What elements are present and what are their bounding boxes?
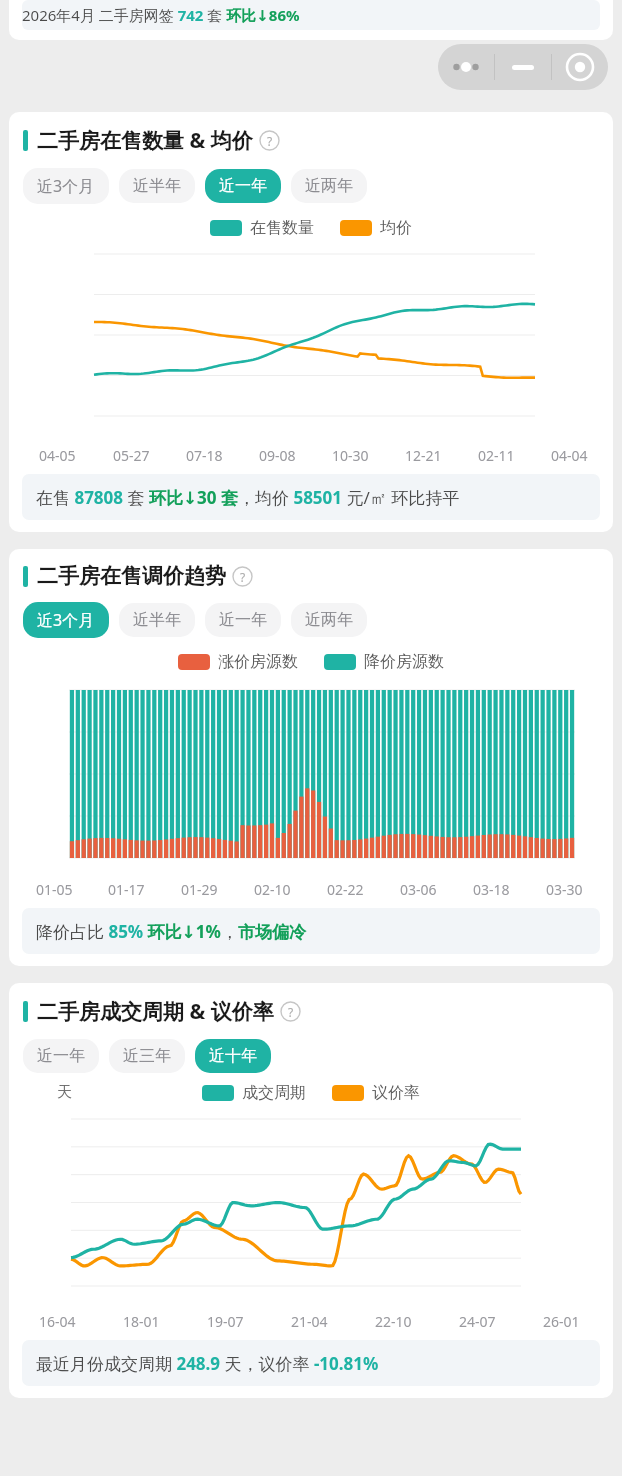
staticText: 近3个月 <box>37 609 95 631</box>
staticText: 22-10 <box>375 1312 412 1331</box>
staticText: 议价率 <box>372 1083 420 1103</box>
button[interactable]: 近3个月 <box>23 168 109 204</box>
button[interactable]: 近三年 <box>109 1039 185 1073</box>
staticText: 近两年 <box>305 176 353 196</box>
staticText: 04-04 <box>551 446 588 465</box>
staticText: 12-21 <box>405 446 442 465</box>
staticText: 二手房成交周期 & 议价率 <box>37 997 274 1026</box>
staticText: 近两年 <box>305 610 353 630</box>
staticText: 近半年 <box>133 176 181 196</box>
staticText: 均价 <box>380 218 412 238</box>
button[interactable]: 降价占比 85% 环比↓1%，市场偏冷 <box>22 908 600 954</box>
staticText: 03-06 <box>400 880 437 899</box>
staticText: ? <box>267 133 273 149</box>
staticText: 21-04 <box>291 1312 328 1331</box>
button[interactable]: 近一年 <box>23 1039 99 1073</box>
staticText: 03-18 <box>473 880 510 899</box>
staticText: 天 <box>57 1083 72 1102</box>
staticText: 10-30 <box>332 446 369 465</box>
staticText: 04-05 <box>39 446 76 465</box>
button[interactable]: 近半年 <box>119 603 195 637</box>
staticText: 降价占比 85% 环比↓1%，市场偏冷 <box>36 920 306 943</box>
staticText: 01-17 <box>108 880 145 899</box>
staticText: 19-07 <box>207 1312 244 1331</box>
staticText: 18-01 <box>123 1312 160 1331</box>
button[interactable]: More <box>438 44 494 90</box>
button[interactable]: 在售 87808 套 环比↓30 套，均价 58501 元/㎡ 环比持平 <box>22 474 600 520</box>
staticText: 在售 87808 套 环比↓30 套，均价 58501 元/㎡ 环比持平 <box>36 486 460 509</box>
button[interactable]: 近一年 <box>205 603 281 637</box>
staticText: 03-30 <box>546 880 583 899</box>
staticText: 二手房在售数量 & 均价 <box>37 126 253 155</box>
button[interactable]: 近半年 <box>119 169 195 203</box>
staticText: 涨价房源数 <box>218 652 298 672</box>
staticText: 近三年 <box>123 1046 171 1066</box>
staticText: 01-29 <box>181 880 218 899</box>
button[interactable]: Help <box>259 130 280 151</box>
button[interactable]: Minimize <box>495 44 551 90</box>
button[interactable]: 近3个月 <box>23 602 109 638</box>
staticText: ? <box>288 1004 294 1020</box>
staticText: 02-11 <box>478 446 515 465</box>
staticText: 05-27 <box>113 446 150 465</box>
staticText: 在售数量 <box>250 218 314 238</box>
button[interactable]: 近两年 <box>291 169 367 203</box>
staticText: 降价房源数 <box>364 652 444 672</box>
staticText: 最近月份成交周期 248.9 天，议价率 -10.81% <box>36 1352 379 1375</box>
button[interactable]: 近一年 <box>205 169 281 203</box>
staticText: 09-08 <box>259 446 296 465</box>
staticText: 26-01 <box>543 1312 580 1331</box>
staticText: ? <box>240 569 246 585</box>
staticText: 07-18 <box>186 446 223 465</box>
button[interactable]: 最近月份成交周期 248.9 天，议价率 -10.81% <box>22 1340 600 1386</box>
staticText: 成交周期 <box>242 1083 306 1103</box>
button[interactable]: Help <box>232 566 253 587</box>
staticText: 二手房在售调价趋势 <box>37 563 226 589</box>
button[interactable]: Help <box>280 1001 301 1022</box>
staticText: 02-10 <box>254 880 291 899</box>
staticText: 近半年 <box>133 610 181 630</box>
staticText: 24-07 <box>459 1312 496 1331</box>
staticText: 02-22 <box>327 880 364 899</box>
button[interactable]: 近十年 <box>195 1039 271 1073</box>
staticText: 16-04 <box>39 1312 76 1331</box>
staticText: 2026年4月 二手房网签 742 套 环比↓86% <box>22 5 300 25</box>
button[interactable]: Close <box>552 44 608 90</box>
staticText: 近一年 <box>219 610 267 630</box>
staticText: 01-05 <box>36 880 73 899</box>
staticText: 近十年 <box>209 1046 257 1066</box>
button[interactable]: 近两年 <box>291 603 367 637</box>
staticText: 近一年 <box>219 176 267 196</box>
staticText: 近一年 <box>37 1046 85 1066</box>
staticText: 近3个月 <box>37 175 95 197</box>
